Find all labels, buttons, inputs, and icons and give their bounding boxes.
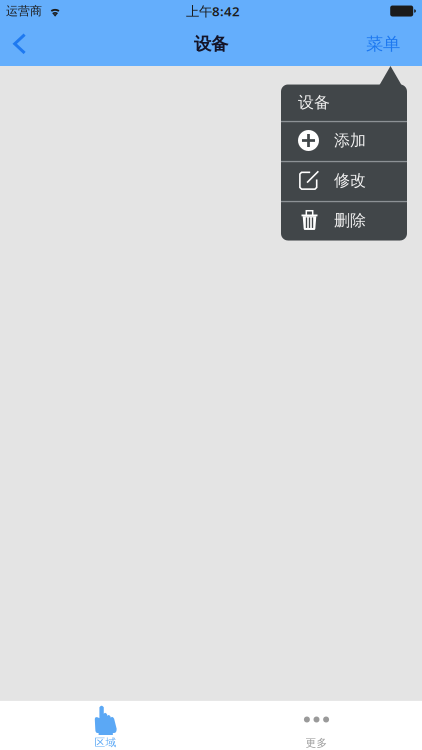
staticText: 区域 <box>94 736 116 749</box>
staticText: 修改 <box>334 171 366 190</box>
button[interactable]: 区域 <box>0 700 211 750</box>
staticText: 上午8:42 <box>186 2 240 20</box>
button[interactable]: 修改 <box>281 160 407 200</box>
button[interactable]: 添加 <box>281 120 407 160</box>
button[interactable]: 更多 <box>211 700 422 750</box>
staticText: 更多 <box>305 736 327 750</box>
staticText: 删除 <box>334 211 366 230</box>
button[interactable]: 删除 <box>281 200 407 240</box>
staticText: 设备 <box>298 93 330 112</box>
staticText: 添加 <box>334 131 366 150</box>
staticText: 运营商 <box>6 4 42 18</box>
button[interactable]: Back <box>0 22 46 66</box>
button[interactable]: 菜单 <box>346 22 422 66</box>
staticText: 设备 <box>194 33 228 55</box>
staticText: 菜单 <box>366 33 400 55</box>
